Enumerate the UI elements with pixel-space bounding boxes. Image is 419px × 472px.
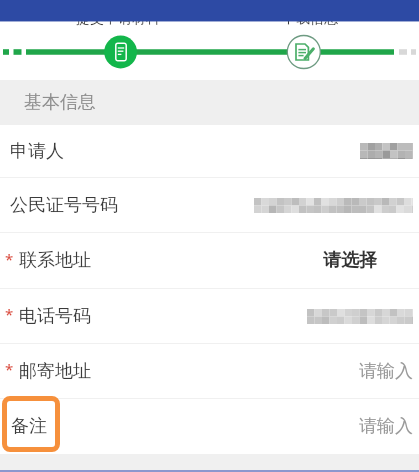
staticText: 电话号码 [19,305,91,328]
staticText: 联系地址 [19,249,91,272]
staticText: 请选择 [323,249,377,272]
staticText: 下载信息 [282,10,338,28]
staticText: 备注 [11,415,47,438]
button[interactable]: 备注 [0,399,419,454]
button[interactable]: Step 2 fill in form [294,42,314,62]
staticText: * [5,249,14,269]
button[interactable]: * [0,233,419,288]
staticText: 公民证号号码 [10,194,118,217]
staticText: 请输入 [359,360,413,383]
staticText: 基本信息 [24,91,96,114]
staticText: 申请人 [10,140,64,163]
staticText: 提交申请材料 [76,10,160,28]
button[interactable]: 公民证号号码 [0,178,419,232]
button[interactable]: * [0,289,419,343]
staticText: * [5,359,14,379]
button[interactable]: 申请人 [0,125,419,177]
button[interactable]: Step 1 completed [111,42,131,62]
staticText: 邮寄地址 [19,360,91,383]
button[interactable]: * [0,344,419,398]
staticText: 请输入 [359,415,413,438]
staticText: * [5,304,14,324]
